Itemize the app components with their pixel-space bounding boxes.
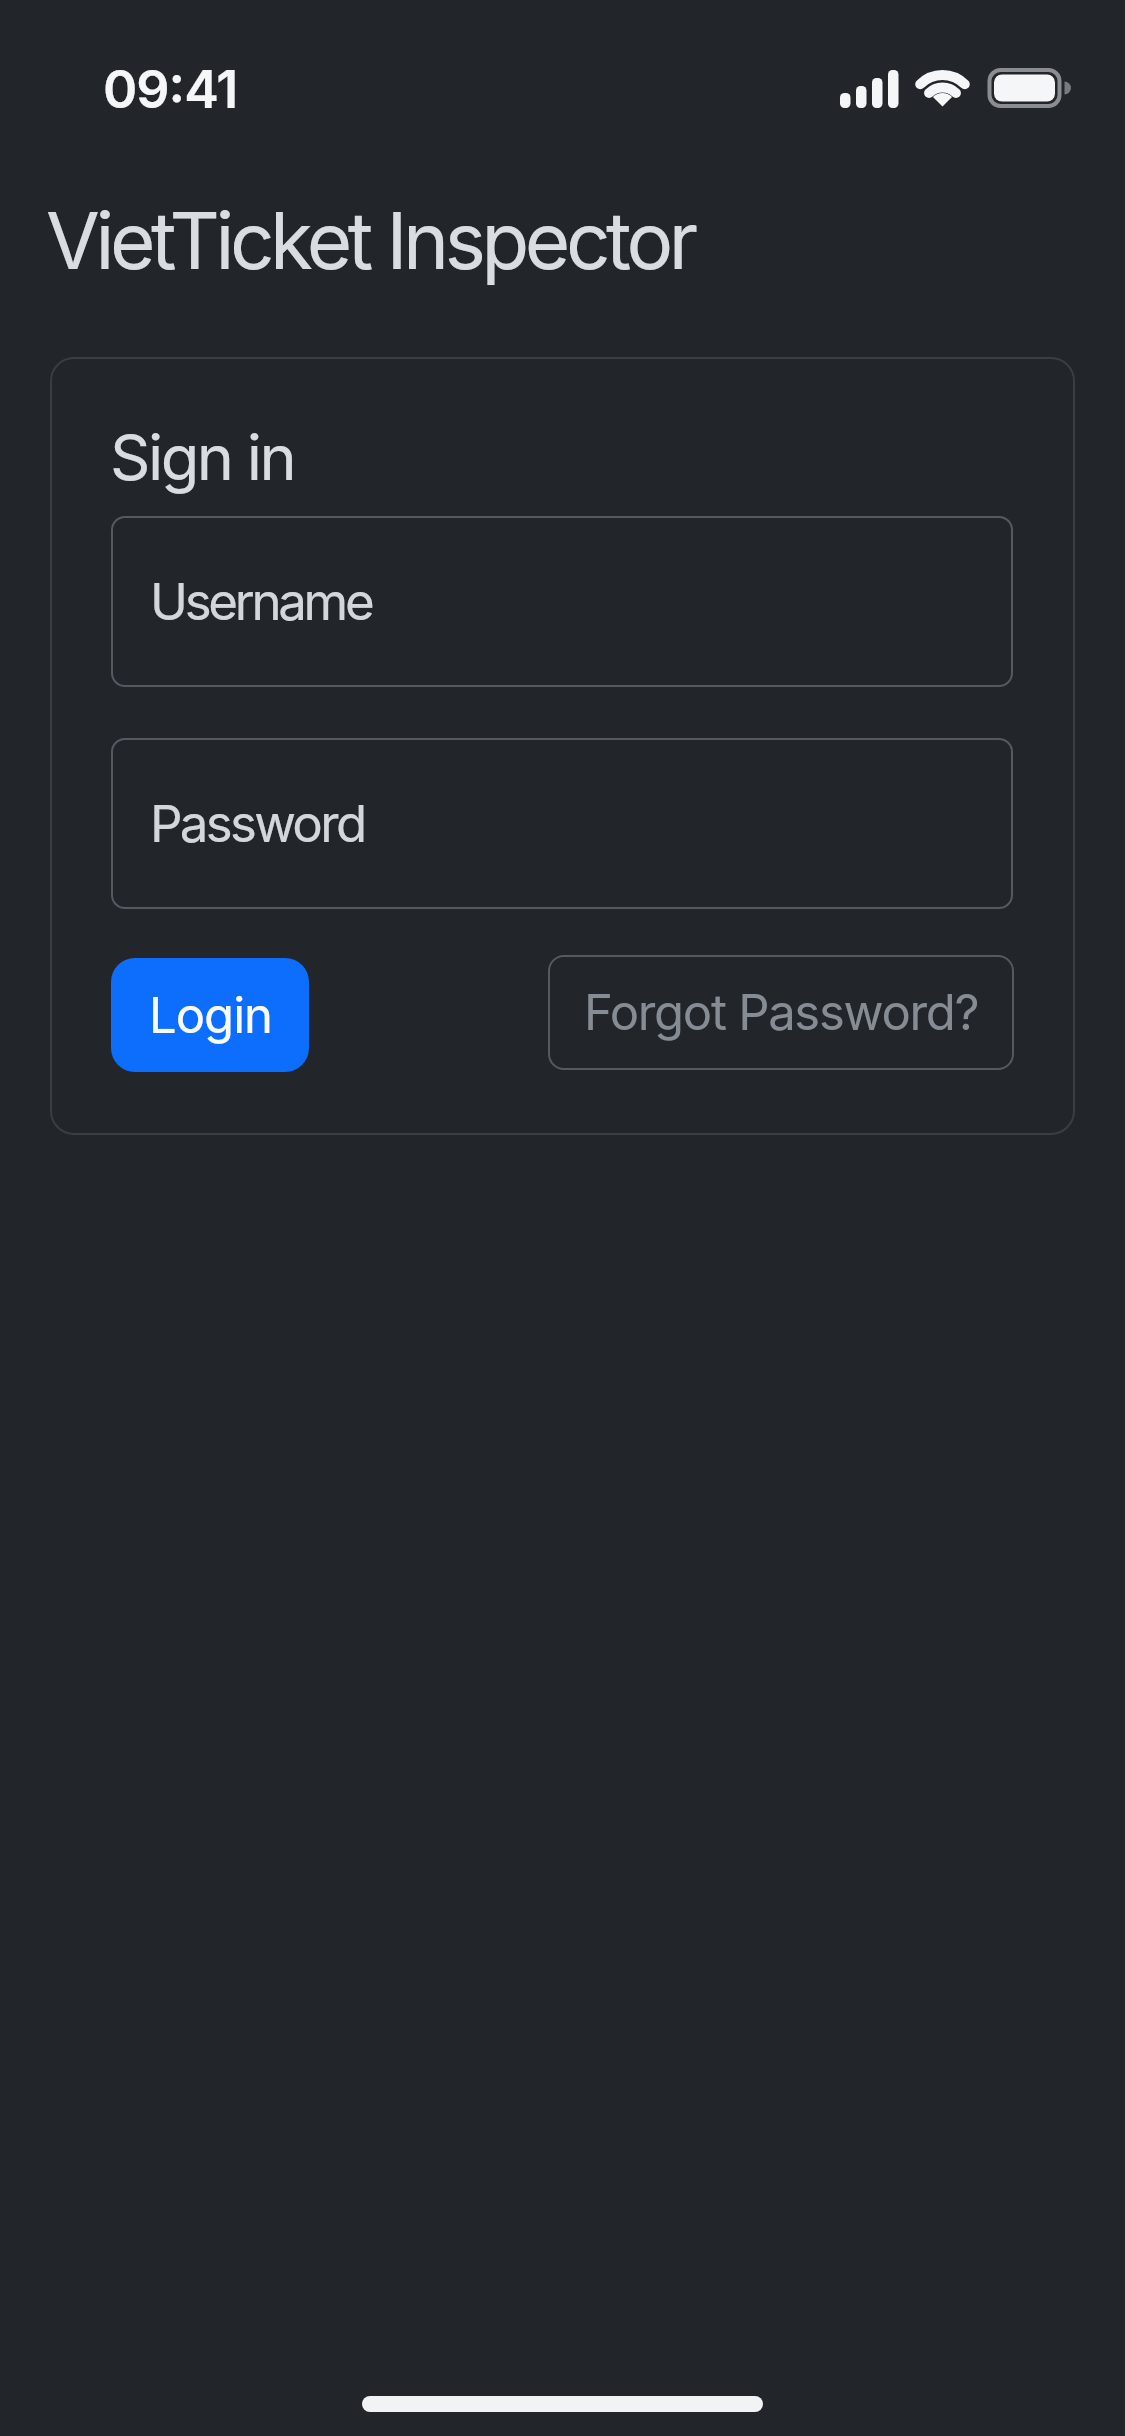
button[interactable]: Username xyxy=(111,516,1013,687)
button[interactable]: Login xyxy=(111,958,309,1072)
staticText: 09:41 xyxy=(103,58,238,121)
staticText: VietTicket Inspector xyxy=(46,193,694,287)
staticText: Username xyxy=(150,571,372,633)
staticText: Login xyxy=(149,986,272,1045)
button[interactable]: Password xyxy=(111,738,1013,909)
button[interactable]: Forgot Password? xyxy=(548,955,1014,1070)
staticText: Forgot Password? xyxy=(584,983,979,1042)
staticText: Password xyxy=(150,793,365,855)
staticText: Sign in xyxy=(110,419,295,495)
